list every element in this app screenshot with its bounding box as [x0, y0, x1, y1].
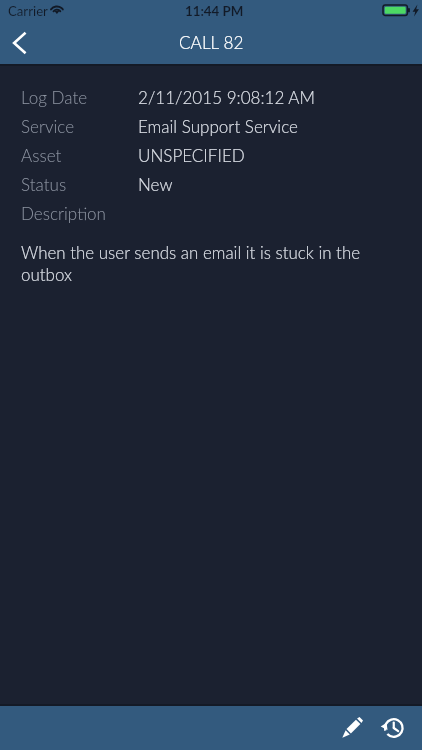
staticText: 2/11/2015 9:08:12 AM [138, 87, 315, 107]
staticText: Asset [21, 145, 62, 165]
staticText: New [138, 174, 173, 194]
staticText: Service [21, 116, 75, 136]
staticText: 11:44 PM [185, 3, 244, 19]
button[interactable]: History [372, 708, 412, 748]
staticText: Carrier [8, 3, 48, 19]
staticText: Email Support Service [138, 116, 298, 136]
staticText: Description [21, 203, 106, 223]
button[interactable]: Back [0, 20, 40, 64]
staticText: When the user sends an email it is stuck… [21, 242, 373, 285]
staticText: CALL 82 [179, 32, 244, 53]
staticText: Status [21, 174, 67, 194]
button[interactable]: Edit [332, 708, 372, 748]
staticText: Log Date [21, 87, 88, 107]
staticText: UNSPECIFIED [138, 145, 245, 165]
